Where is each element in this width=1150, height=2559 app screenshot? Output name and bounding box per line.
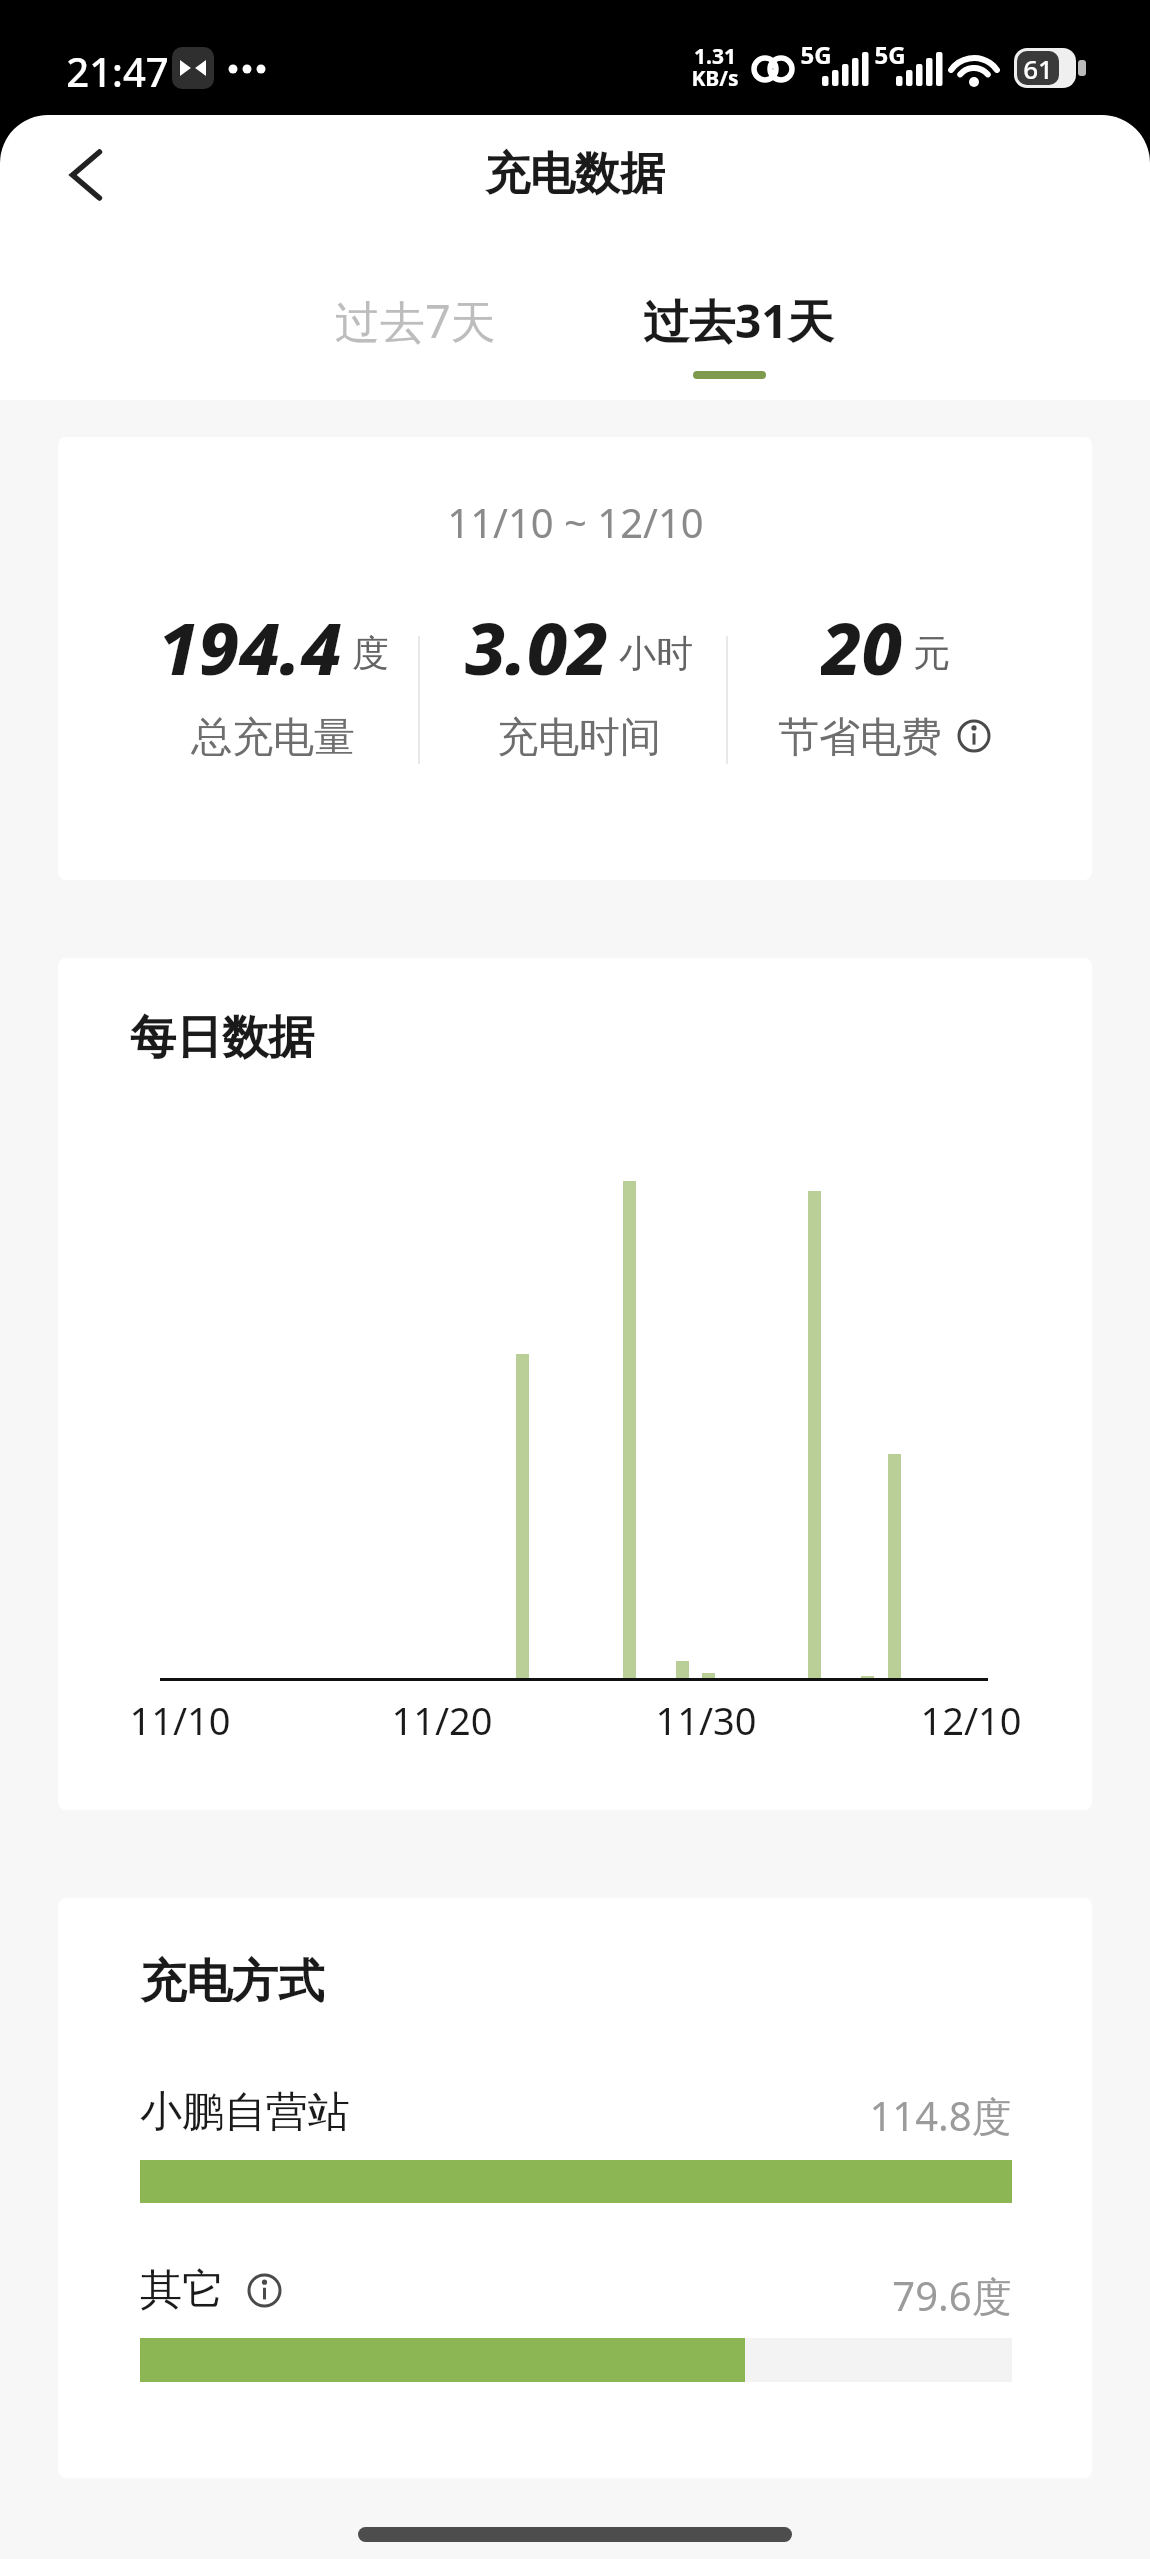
staticText: 11/10 ~ 12/10 (447, 495, 704, 543)
staticText: 61 (1023, 51, 1053, 85)
staticText: 充电方式 (140, 1953, 324, 2011)
staticText: 11/30 (655, 1694, 757, 1744)
staticText: 节省电费 (778, 712, 942, 760)
staticText: 小鹏自营站 (140, 2086, 350, 2138)
button[interactable] (956, 718, 992, 754)
staticText: 20 (821, 598, 903, 694)
staticText: 度 (352, 630, 389, 677)
staticText: 过去31天 (643, 289, 834, 352)
staticText: 12/10 (920, 1694, 1022, 1744)
staticText: 114.8度 (869, 2088, 1012, 2136)
button[interactable] (246, 2272, 283, 2309)
staticText: 小时 (619, 630, 693, 677)
staticText: 194.4 (158, 598, 342, 694)
staticText: 11/10 (129, 1694, 231, 1744)
staticText: 5G (800, 38, 832, 66)
staticText: 过去7天 (335, 290, 496, 351)
staticText: KB/s (691, 64, 739, 88)
staticText: 79.6度 (892, 2268, 1012, 2316)
staticText: 11/20 (391, 1694, 493, 1744)
staticText: 21:47 (66, 44, 169, 92)
button[interactable] (62, 144, 110, 206)
button[interactable]: 过去7天 (300, 280, 530, 360)
staticText: 5G (874, 38, 906, 66)
staticText: 充电时间 (497, 712, 661, 760)
staticText: 总充电量 (191, 712, 355, 760)
staticText: 元 (913, 630, 950, 677)
staticText: 3.02 (465, 598, 609, 694)
staticText: 充电数据 (485, 146, 665, 202)
staticText: 1.31 (694, 42, 736, 66)
button[interactable]: 过去31天 (620, 280, 856, 360)
staticText: 其它 (140, 2264, 224, 2316)
staticText: 每日数据 (130, 1009, 314, 1067)
